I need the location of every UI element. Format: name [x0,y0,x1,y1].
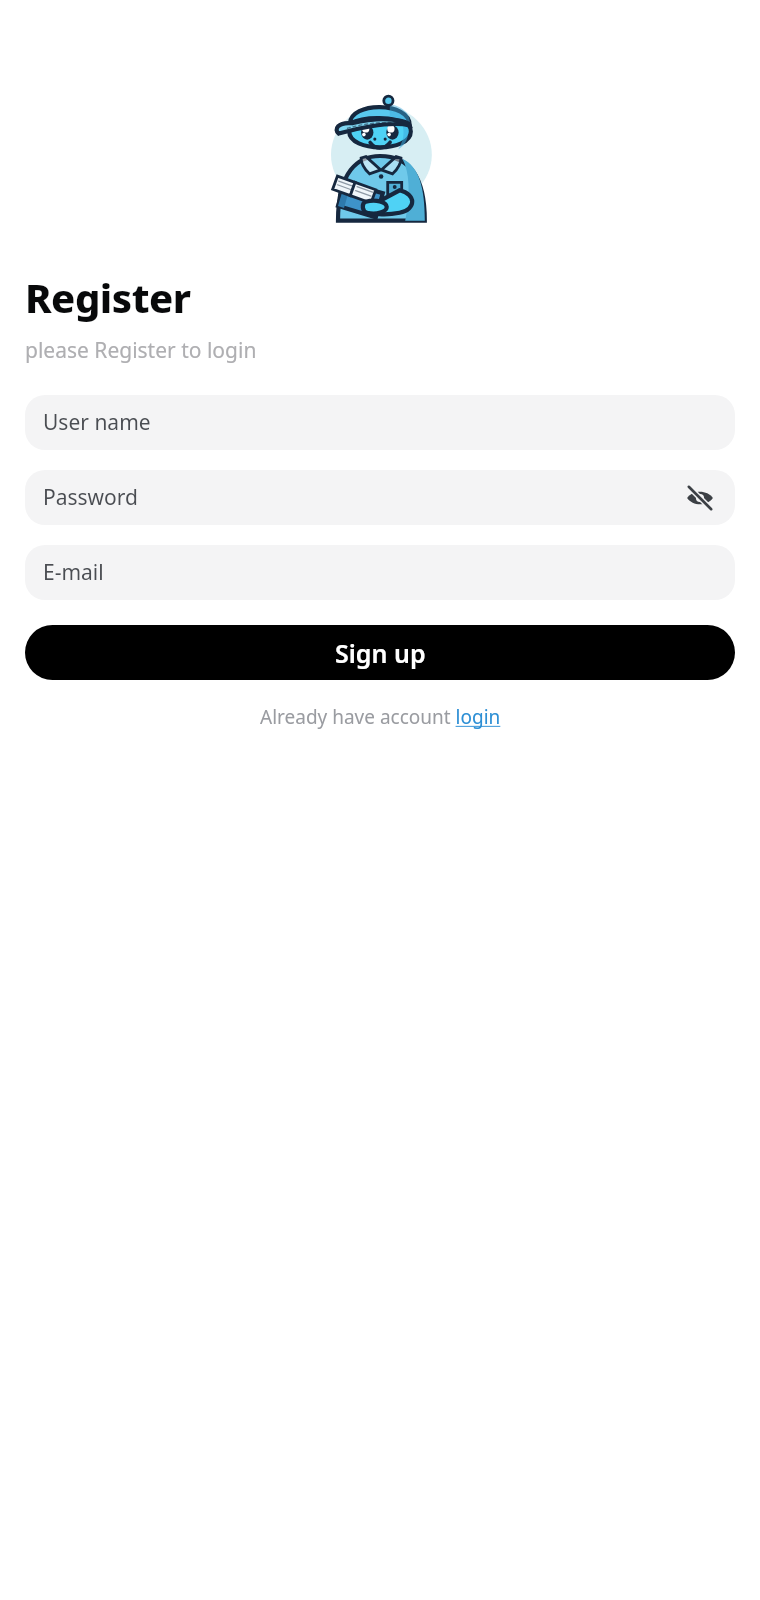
button[interactable]: Already have account login [250,700,511,734]
staticText: User name [43,408,151,437]
button[interactable]: Sign up [25,625,735,680]
button[interactable]: User name [25,395,735,450]
staticText: Password [43,483,138,512]
button[interactable]: Password [25,470,735,525]
staticText: E-mail [43,558,104,587]
staticText: Sign up [335,636,426,670]
staticText: Register [25,270,191,324]
staticText: please Register to login [25,336,257,365]
button[interactable]: E-mail [25,545,735,600]
other: App mascot [310,90,450,222]
staticText: Already have account login [260,704,501,730]
button[interactable]: Toggle password visibility [683,481,717,515]
